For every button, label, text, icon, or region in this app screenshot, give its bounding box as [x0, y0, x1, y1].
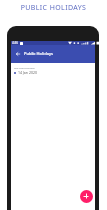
staticText: 4:36 — [12, 41, 18, 45]
staticText: 14 Jan 2020 — [18, 70, 37, 75]
staticText: Public Holidays — [24, 51, 54, 56]
button[interactable]: Add — [80, 190, 93, 203]
button[interactable]: Back — [11, 45, 24, 63]
staticText: Kite flying festival — [14, 66, 35, 69]
staticText: PUBLIC HOLIDAYS — [0, 3, 107, 13]
